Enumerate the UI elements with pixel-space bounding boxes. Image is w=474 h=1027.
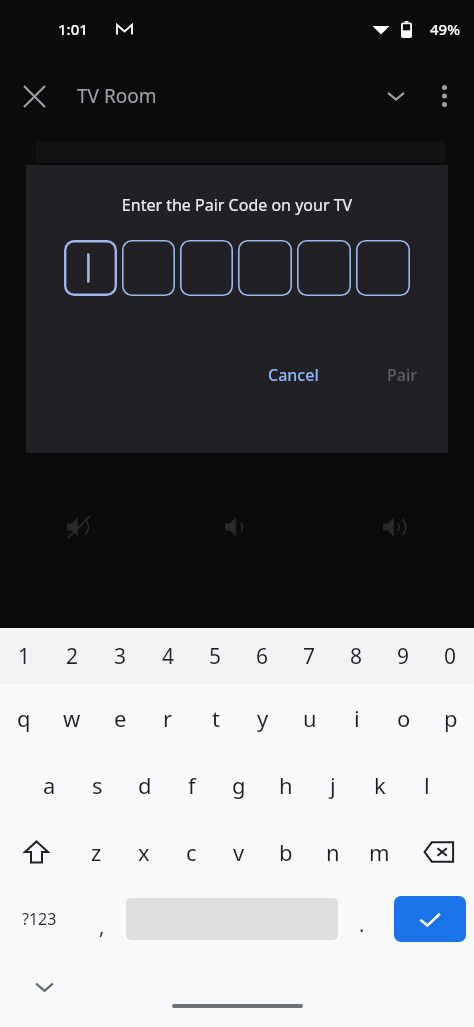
staticText: ?123 [22,908,57,930]
staticText: 8 [350,642,363,671]
staticText: Enter the Pair Code on your TV [26,194,448,216]
button[interactable]: , [78,885,126,953]
staticText: q [17,703,31,733]
staticText: h [279,770,293,800]
button[interactable]: Pair code digit [122,240,175,296]
button[interactable]: Pair code digit [180,240,233,296]
staticText: 6 [256,642,269,671]
staticText: w [63,703,81,733]
staticText: a [43,770,56,800]
button[interactable]: p [427,684,474,751]
button[interactable]: Close [12,74,56,118]
button[interactable]: i [333,684,380,751]
staticText: k [374,770,386,800]
button[interactable]: 4 [144,628,192,684]
button[interactable]: 5 [192,628,239,684]
button[interactable]: r [144,684,192,751]
staticText: 4 [162,642,175,671]
button[interactable]: 7 [286,628,333,684]
staticText: v [233,837,245,867]
staticText: i [354,703,360,733]
staticText: m [369,837,390,867]
button[interactable]: Pair code digit [356,240,410,296]
button[interactable]: s [73,751,121,818]
button[interactable]: y [239,684,286,751]
button[interactable]: . [338,885,386,953]
button[interactable]: Backspace [403,818,474,885]
staticText: o [397,703,411,733]
button[interactable]: h [262,751,309,818]
staticText: x [138,837,150,867]
staticText: b [279,837,293,867]
button[interactable]: k [356,751,403,818]
staticText: Pair [387,364,418,386]
button[interactable]: 1 [0,628,48,684]
staticText: 9 [397,642,410,671]
button[interactable]: Pair code digit [238,240,292,296]
staticText: 3 [114,642,127,671]
button[interactable]: n [309,818,356,885]
staticText: c [186,837,197,867]
button[interactable]: m [356,818,403,885]
staticText: Cancel [268,364,319,386]
staticText: . [359,911,365,938]
button[interactable]: Pair code digit [64,240,117,296]
button[interactable]: 0 [427,628,474,684]
button[interactable]: g [215,751,262,818]
staticText: z [91,837,102,867]
button[interactable]: a [25,751,73,818]
button[interactable]: Shift [0,818,72,885]
staticText: TV Room [77,83,157,109]
staticText: 49% [430,19,460,39]
button[interactable]: 8 [333,628,380,684]
button[interactable]: t [192,684,239,751]
staticText: 1 [18,642,31,671]
staticText: l [424,770,430,800]
staticText: 0 [444,642,457,671]
button[interactable]: 2 [48,628,96,684]
button[interactable]: Hide keyboard [22,965,66,1009]
staticText: f [188,770,196,800]
staticText: 7 [303,642,316,671]
button[interactable]: w [48,684,96,751]
button[interactable]: Mute [0,491,158,587]
button[interactable]: Cancel [256,354,331,396]
staticText: , [99,913,105,940]
button[interactable]: e [96,684,144,751]
button[interactable]: Pair [375,354,430,396]
button[interactable]: o [380,684,427,751]
staticText: r [163,703,173,733]
button[interactable]: d [121,751,168,818]
button[interactable]: 3 [96,628,144,684]
button[interactable]: b [262,818,309,885]
staticText: y [257,703,269,733]
button[interactable]: u [286,684,333,751]
button[interactable]: q [0,684,48,751]
button[interactable]: More options [422,74,466,118]
staticText: n [326,837,340,867]
button[interactable]: z [72,818,120,885]
button[interactable]: 9 [380,628,427,684]
staticText: g [232,770,246,800]
button[interactable]: f [168,751,215,818]
staticText: 5 [209,642,222,671]
button[interactable]: x [120,818,168,885]
button[interactable]: c [168,818,215,885]
staticText: j [330,770,336,800]
button[interactable]: j [309,751,356,818]
button[interactable]: Pair code digit [297,240,351,296]
staticText: s [92,770,103,800]
button[interactable]: ?123 [0,885,78,953]
button[interactable]: Volume up [316,491,474,587]
staticText: t [212,703,220,733]
button[interactable]: Enter [394,896,466,942]
staticText: 1:01 [58,19,88,39]
button[interactable]: v [215,818,262,885]
button[interactable]: l [403,751,450,818]
staticText: e [114,703,127,733]
button[interactable]: 6 [239,628,286,684]
staticText: u [303,703,317,733]
button[interactable]: Select device [374,74,418,118]
